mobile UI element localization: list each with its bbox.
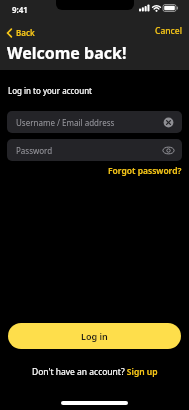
staticText: 9:41 [12, 4, 28, 15]
staticText: Welcome back! [7, 42, 127, 64]
staticText: Don't have an account? Sign up [32, 366, 158, 378]
staticText: Password [16, 145, 53, 156]
staticText: Cancel [155, 25, 182, 37]
button[interactable]: Don't have an account? Sign up [32, 366, 158, 378]
button[interactable]: Username / Email address [7, 111, 182, 133]
staticText: Forgot password? [108, 165, 182, 177]
button[interactable]: Cancel [153, 23, 184, 39]
button[interactable]: Forgot password? [108, 165, 182, 177]
staticText: Username / Email address [16, 117, 115, 128]
button[interactable]: Password [7, 139, 182, 161]
staticText: Back [16, 27, 35, 38]
staticText: Log in to your account [8, 85, 92, 96]
button[interactable]: Log in [8, 323, 181, 349]
staticText: Log in [81, 330, 108, 342]
button[interactable]: Back [4, 25, 37, 40]
